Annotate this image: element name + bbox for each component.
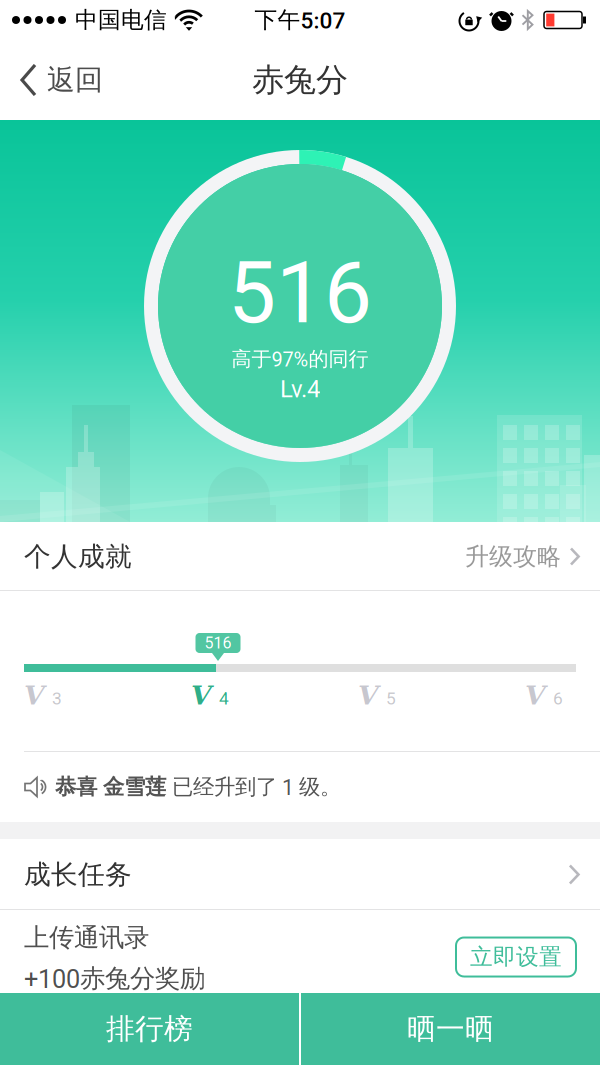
staticText: 晒一晒 <box>407 1011 494 1047</box>
staticText: V <box>525 679 546 711</box>
staticText: 恭喜 金雪莲 已经升到了 1 级。 <box>55 774 341 800</box>
staticText: 升级攻略 <box>465 541 561 572</box>
button[interactable]: 立即设置 <box>456 926 576 976</box>
staticText: 立即设置 <box>470 943 562 971</box>
button[interactable]: 返回 <box>0 62 103 98</box>
staticText: 赤兔分 <box>252 60 348 100</box>
staticText: Lv.4 <box>280 375 320 403</box>
staticText: 516 <box>204 634 231 652</box>
staticText: 上传通讯录 <box>24 922 149 953</box>
staticText: 5 <box>386 688 396 709</box>
staticText: 返回 <box>47 62 103 98</box>
staticText: +100赤兔分奖励 <box>24 962 205 994</box>
button[interactable]: 升级攻略 <box>465 541 580 572</box>
button[interactable]: 排行榜 <box>0 993 299 1065</box>
staticText: 3 <box>52 688 62 709</box>
staticText: V <box>24 679 45 711</box>
staticText: 4 <box>219 688 229 709</box>
staticText: 516 <box>228 243 372 343</box>
staticText: 中国电信 <box>75 6 167 34</box>
staticText: 排行榜 <box>106 1011 193 1047</box>
button[interactable]: 晒一晒 <box>301 993 600 1065</box>
button[interactable]: 成长任务 <box>0 839 600 909</box>
staticText: V <box>358 679 379 711</box>
staticText: 6 <box>553 688 563 709</box>
staticText: 高于97%的同行 <box>231 346 368 372</box>
staticText: 成长任务 <box>24 858 132 891</box>
staticText: 下午5:07 <box>254 6 345 34</box>
staticText: V <box>191 679 212 711</box>
staticText: 个人成就 <box>24 540 132 573</box>
